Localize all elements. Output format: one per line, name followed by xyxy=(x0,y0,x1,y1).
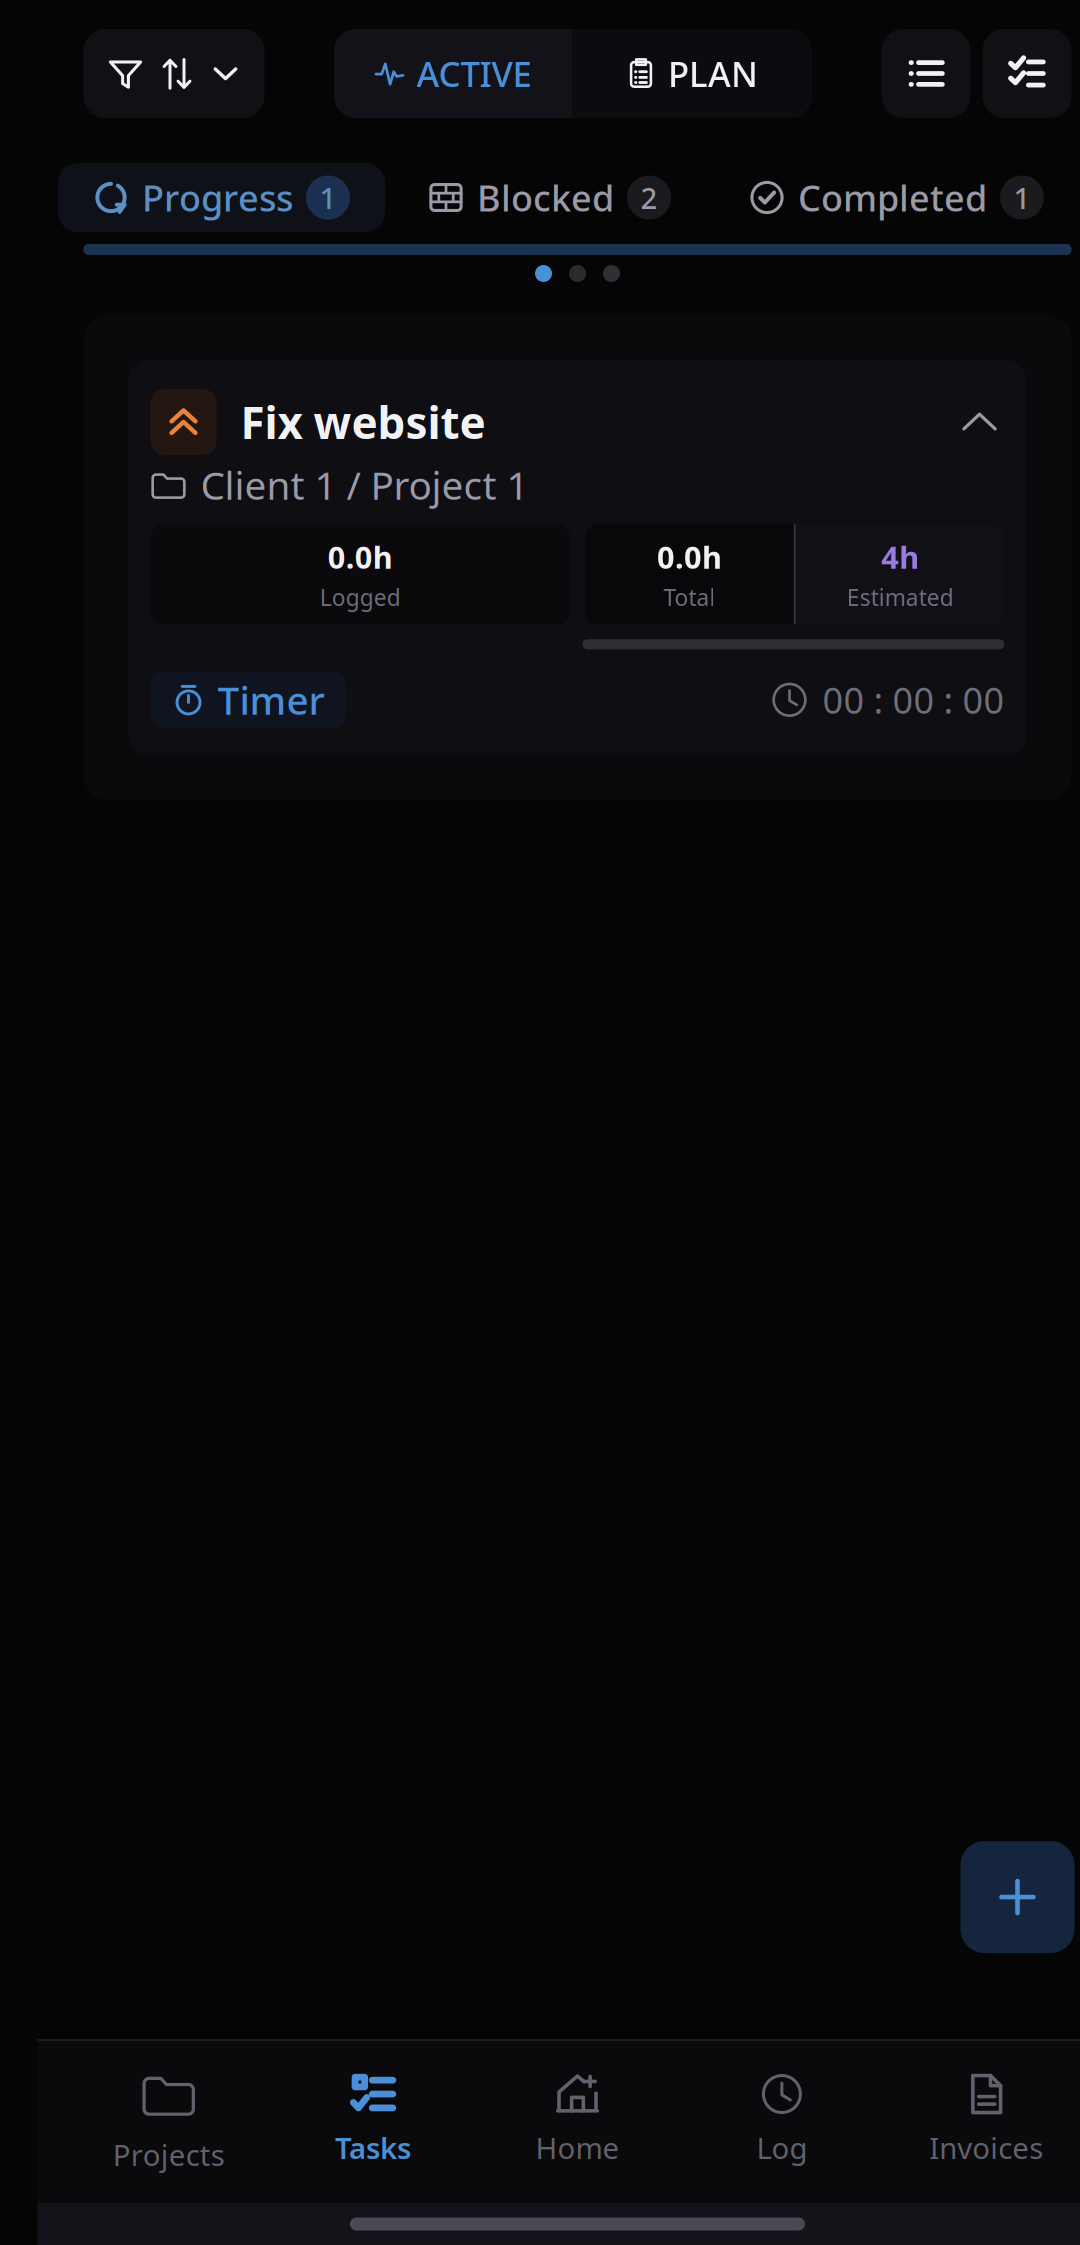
button[interactable]: Log xyxy=(680,2063,884,2177)
staticText: Invoices xyxy=(929,2128,1043,2167)
staticText: Client 1 / Project 1 xyxy=(200,459,528,510)
button[interactable]: List view xyxy=(881,29,970,118)
staticText: Log xyxy=(756,2128,807,2167)
staticText: 1 xyxy=(319,178,336,217)
button[interactable]: Projects xyxy=(66,2056,271,2184)
button[interactable]: Filter and sort xyxy=(83,29,264,118)
staticText: Home xyxy=(535,2128,619,2167)
button[interactable]: Progress xyxy=(58,163,385,232)
staticText: Total xyxy=(663,582,715,612)
button[interactable]: Home xyxy=(475,2063,680,2177)
button[interactable]: Checklist view xyxy=(982,29,1071,118)
staticText: Estimated xyxy=(847,582,954,612)
staticText: Timer xyxy=(217,674,324,725)
button[interactable]: Invoices xyxy=(884,2063,1080,2177)
staticText: Fix website xyxy=(240,393,485,451)
staticText: Logged xyxy=(320,582,401,612)
button[interactable]: Add task xyxy=(960,1841,1074,1953)
staticText: 1 xyxy=(1013,178,1030,217)
staticText: 0.0h xyxy=(328,536,393,577)
button[interactable]: Blocked xyxy=(393,163,706,232)
button[interactable]: Completed xyxy=(714,163,1079,232)
staticText: Completed xyxy=(798,174,987,221)
staticText: 4h xyxy=(881,536,919,577)
staticText: 0.0h xyxy=(657,536,722,577)
staticText: PLAN xyxy=(668,50,758,96)
staticText: Blocked xyxy=(477,174,614,221)
button[interactable]: PLAN xyxy=(572,29,812,118)
button[interactable]: Tasks xyxy=(271,2063,475,2177)
button[interactable]: ACTIVE xyxy=(334,29,572,118)
staticText: ACTIVE xyxy=(416,50,531,96)
button[interactable]: Timer xyxy=(150,671,346,728)
staticText: 2 xyxy=(640,178,657,217)
button[interactable]: Collapse xyxy=(954,397,1004,447)
staticText: Projects xyxy=(113,2135,225,2174)
staticText: 00 : 00 : 00 xyxy=(822,676,1004,724)
staticText: Progress xyxy=(142,174,293,221)
staticText: Tasks xyxy=(335,2128,411,2167)
